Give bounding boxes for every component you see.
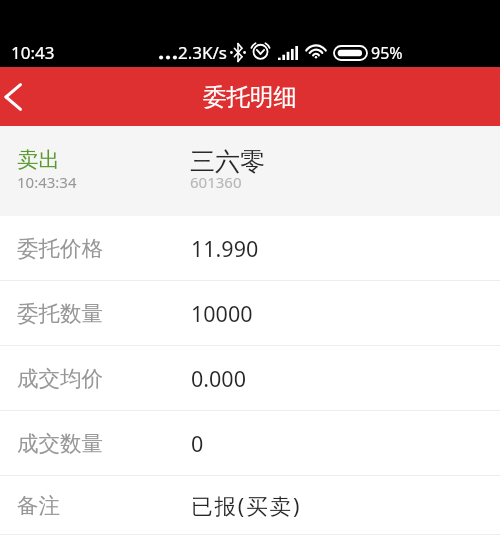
staticText: 成交均价	[17, 365, 103, 392]
staticText: 0	[191, 429, 204, 458]
button[interactable]: 成交均价	[0, 346, 500, 411]
staticText: 11.990	[191, 234, 259, 263]
staticText: 委托明细	[203, 82, 297, 112]
staticText: 备注	[17, 492, 60, 519]
staticText: 10:43	[11, 41, 55, 64]
button[interactable]: Back	[0, 67, 48, 126]
button[interactable]: 委托数量	[0, 281, 500, 346]
staticText: 601360	[190, 172, 242, 192]
staticText: 2.3K/s	[178, 41, 227, 64]
staticText: 卖出	[17, 146, 60, 173]
staticText: 95%	[371, 42, 403, 64]
staticText: 10:43:34	[17, 172, 77, 192]
staticText: 委托数量	[17, 300, 103, 327]
staticText: 委托价格	[17, 235, 103, 262]
button[interactable]: 成交数量	[0, 411, 500, 476]
button[interactable]: 备注	[0, 476, 500, 535]
staticText: 10000	[191, 299, 253, 328]
staticText: 三六零	[190, 146, 265, 177]
staticText: 成交数量	[17, 430, 103, 457]
staticText: 0.000	[191, 364, 246, 393]
staticText: 已报(买卖)	[191, 491, 302, 520]
button[interactable]: 委托价格	[0, 216, 500, 281]
